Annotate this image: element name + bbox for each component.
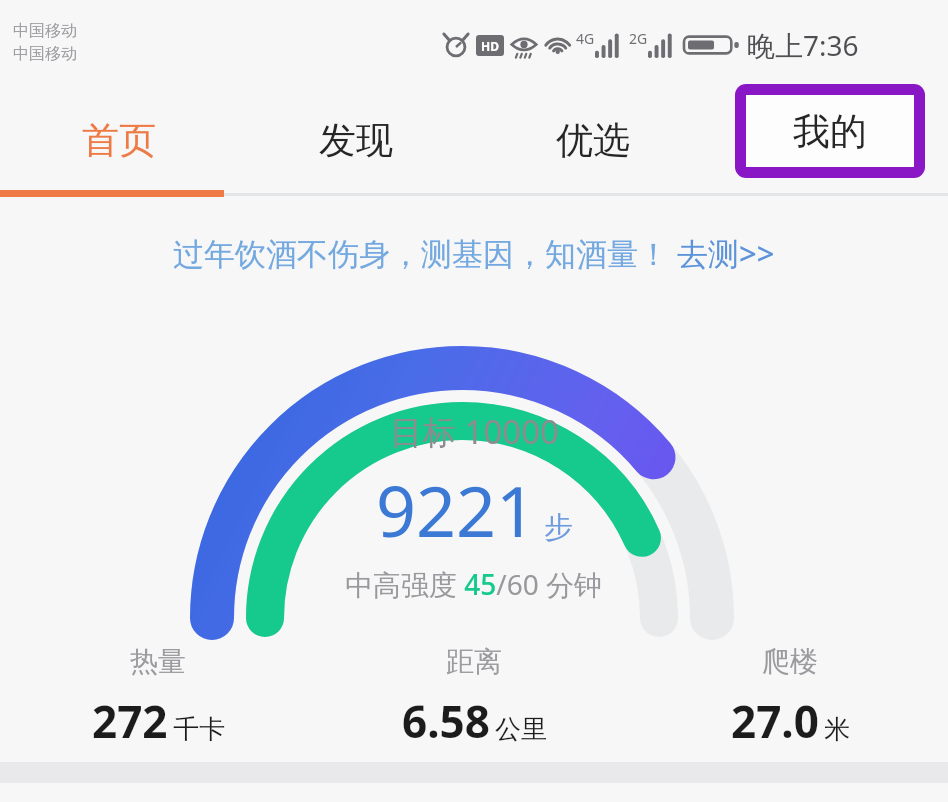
- staticText: 6.58: [402, 691, 490, 751]
- staticText: 中国移动: [13, 44, 77, 64]
- button[interactable]: 距离: [316, 644, 632, 751]
- other: Signal: [595, 32, 622, 58]
- staticText: 272: [92, 691, 168, 751]
- button[interactable]: 我的: [746, 95, 914, 167]
- staticText: 热量: [130, 644, 186, 679]
- button[interactable]: 优选: [474, 90, 711, 203]
- staticText: HD: [481, 38, 499, 54]
- button[interactable]: 爬楼: [632, 644, 948, 751]
- staticText: 27.0: [731, 691, 819, 751]
- staticText: 过年饮酒不伤身，测基因，知酒量！ 去测>>: [173, 232, 775, 274]
- staticText: 目标 10000: [390, 409, 559, 454]
- button[interactable]: 发现: [237, 90, 474, 203]
- staticText: 中国移动: [13, 21, 77, 41]
- staticText: 首页: [82, 117, 156, 164]
- staticText: 米: [824, 713, 850, 746]
- staticText: 爬楼: [762, 644, 818, 679]
- staticText: 中高强度 45/60 分钟: [345, 565, 603, 603]
- staticText: 4G: [576, 29, 595, 48]
- staticText: 步: [544, 509, 573, 546]
- staticText: 我的: [793, 108, 867, 155]
- staticText: 公里: [495, 713, 547, 746]
- staticText: 距离: [446, 644, 502, 679]
- staticText: 9221: [376, 462, 537, 557]
- other: Signal: [648, 32, 675, 58]
- staticText: 千卡: [173, 713, 225, 746]
- button[interactable]: 热量: [0, 644, 316, 751]
- staticText: 优选: [556, 117, 630, 164]
- staticText: 晚上7:36: [747, 26, 859, 64]
- button[interactable]: 过年饮酒不伤身，测基因，知酒量！ 去测>>: [165, 228, 783, 278]
- button[interactable]: 首页: [0, 90, 237, 203]
- staticText: 发现: [319, 117, 393, 164]
- staticText: 2G: [629, 29, 648, 48]
